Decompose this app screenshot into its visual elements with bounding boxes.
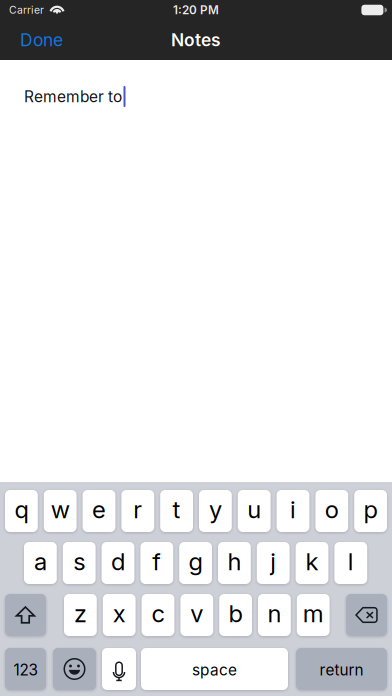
button[interactable]: f [140, 542, 173, 584]
button[interactable]: Done [13, 20, 70, 59]
staticText: x [113, 599, 126, 628]
button[interactable]: g [179, 542, 212, 584]
staticText: f [152, 547, 161, 576]
button[interactable]: y [199, 490, 232, 532]
button[interactable]: 123 [5, 648, 46, 690]
button[interactable]: z [64, 594, 97, 636]
button[interactable]: o [315, 490, 348, 532]
staticText: n [267, 599, 281, 628]
staticText: e [92, 495, 106, 524]
staticText: y [209, 495, 222, 524]
button[interactable]: l [334, 542, 367, 584]
staticText: h [227, 547, 241, 576]
button[interactable]: return [296, 648, 387, 690]
button[interactable]: d [102, 542, 134, 584]
button[interactable]: Delete [346, 594, 387, 636]
button[interactable]: a [24, 542, 57, 584]
staticText: j [270, 547, 276, 576]
staticText: t [173, 495, 181, 524]
button[interactable]: b [219, 594, 252, 636]
staticText: m [303, 599, 324, 628]
staticText: Carrier [9, 4, 44, 16]
staticText: d [111, 547, 125, 576]
staticText: z [74, 599, 87, 628]
staticText: p [364, 495, 378, 524]
button[interactable]: e [83, 490, 115, 532]
staticText: w [51, 495, 70, 524]
button[interactable]: u [238, 490, 271, 532]
button[interactable]: space [141, 648, 288, 690]
staticText: u [247, 495, 261, 524]
staticText: Remember to [24, 87, 122, 106]
button[interactable]: j [257, 542, 290, 584]
staticText: o [325, 495, 339, 524]
staticText: g [189, 547, 203, 576]
staticText: Done [20, 29, 63, 50]
staticText: space [192, 661, 237, 679]
button[interactable]: p [354, 490, 387, 532]
button[interactable]: Dictation [102, 648, 136, 690]
staticText: k [305, 547, 318, 576]
button[interactable]: i [277, 490, 309, 532]
staticText: 1:20 PM [173, 3, 219, 17]
staticText: b [229, 599, 243, 628]
staticText: c [151, 599, 164, 628]
button[interactable]: r [121, 490, 154, 532]
button[interactable]: v [180, 594, 213, 636]
staticText: s [73, 547, 85, 576]
staticText: v [190, 599, 203, 628]
staticText: l [348, 547, 354, 576]
button[interactable]: h [218, 542, 251, 584]
staticText: return [319, 661, 363, 679]
button[interactable]: Emoji keyboard [53, 648, 96, 690]
button[interactable]: q [5, 490, 38, 532]
staticText: Notes [171, 29, 221, 50]
staticText: r [133, 495, 142, 524]
button[interactable]: x [103, 594, 136, 636]
button[interactable]: Shift [5, 594, 46, 636]
staticText: q [14, 495, 28, 524]
staticText: a [34, 547, 47, 576]
button[interactable]: c [142, 594, 174, 636]
button[interactable]: t [160, 490, 193, 532]
button[interactable]: m [297, 594, 330, 636]
button[interactable]: w [44, 490, 77, 532]
staticText: 123 [13, 661, 37, 679]
staticText: i [290, 495, 296, 524]
button[interactable]: n [258, 594, 291, 636]
button[interactable]: k [296, 542, 328, 584]
button[interactable]: s [63, 542, 96, 584]
